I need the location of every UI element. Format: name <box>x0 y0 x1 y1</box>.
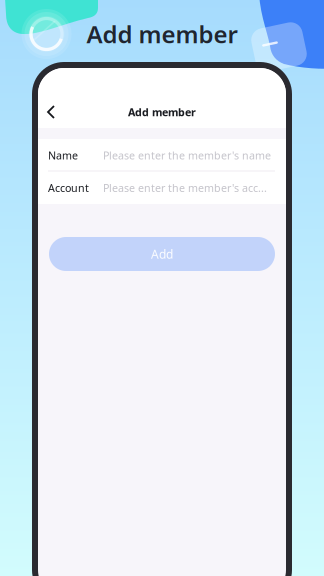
staticText: Please enter the member's acc... <box>103 181 267 195</box>
staticText: Account <box>48 181 89 195</box>
staticText: Add member <box>128 105 196 119</box>
staticText: Add <box>151 246 173 262</box>
staticText: Add member <box>86 18 237 50</box>
staticText: Name <box>48 148 78 162</box>
button[interactable]: Add <box>49 237 275 271</box>
button[interactable]: Back <box>37 100 65 124</box>
staticText: Please enter the member's name <box>103 148 271 162</box>
